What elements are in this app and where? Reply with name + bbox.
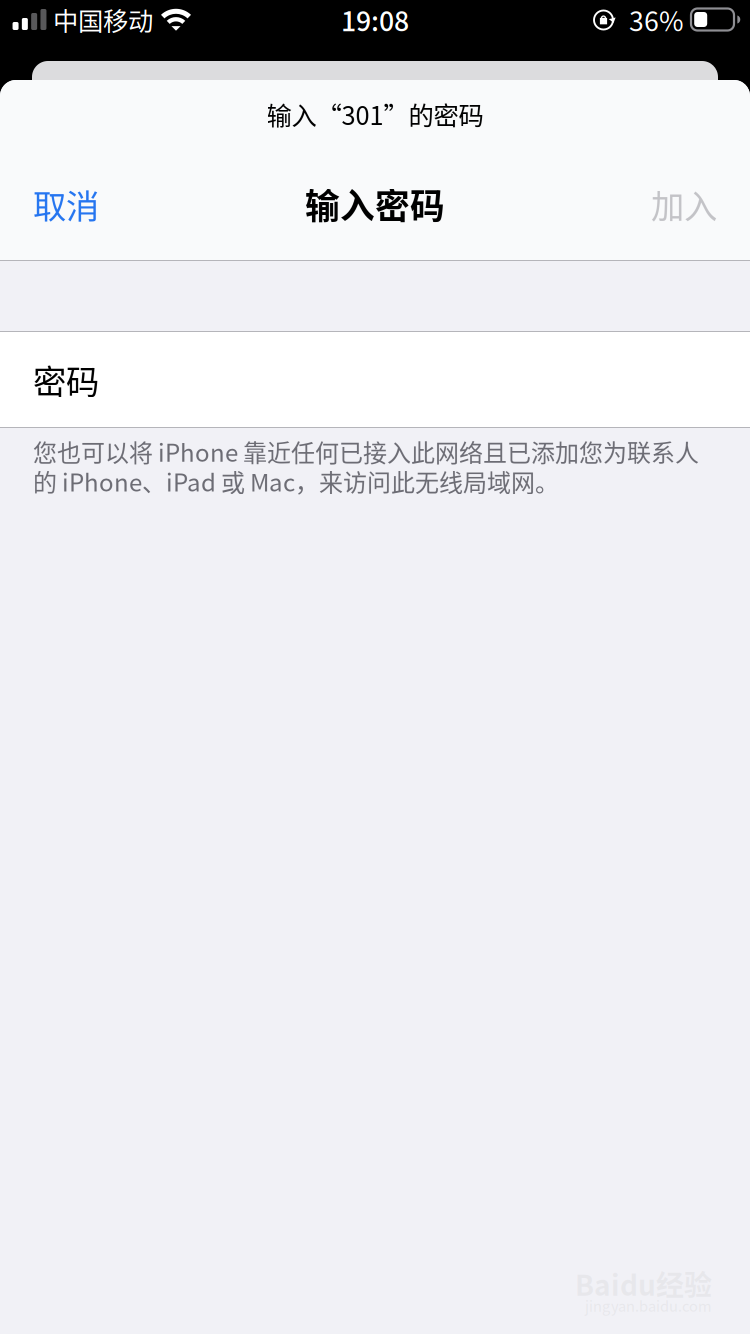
button[interactable]: 加入 (627, 148, 750, 260)
staticText: jingyan.baidu.com (585, 1295, 712, 1316)
staticText: Baidu经验 (575, 1263, 712, 1304)
staticText: 取消 (33, 180, 99, 228)
staticText: 的 iPhone、iPad 或 Mac，来访问此无线局域网。 (33, 464, 559, 499)
staticText: 36% (629, 0, 684, 39)
staticText: 中国移动 (53, 1, 153, 38)
staticText: 加入 (651, 180, 717, 228)
button[interactable]: 密码 (0, 332, 750, 427)
button[interactable]: 取消 (0, 148, 123, 260)
staticText: 19:08 (341, 0, 409, 39)
staticText: 输入密码 (305, 179, 445, 229)
staticText: 您也可以将 iPhone 靠近任何已接入此网络且已添加您为联系人 (33, 434, 699, 469)
staticText: 输入“301”的密码 (266, 96, 483, 132)
staticText: 密码 (33, 355, 99, 404)
